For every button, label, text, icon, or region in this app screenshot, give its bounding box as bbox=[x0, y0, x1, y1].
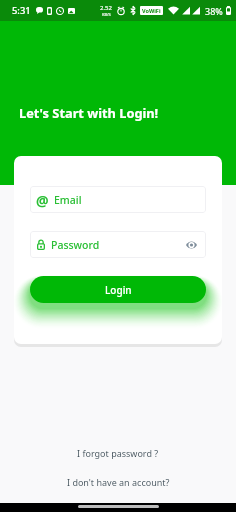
staticText: Password bbox=[51, 238, 100, 252]
staticText: @ bbox=[36, 191, 49, 210]
staticText: I don't have an account? bbox=[67, 476, 170, 488]
button[interactable]: Password bbox=[30, 231, 206, 258]
staticText: 2.52 bbox=[100, 4, 112, 12]
button[interactable]: Show password bbox=[184, 238, 198, 252]
staticText: Login bbox=[105, 283, 132, 297]
staticText: VoWiFi bbox=[142, 7, 161, 14]
staticText: 38% bbox=[205, 5, 223, 17]
button[interactable]: Login bbox=[30, 276, 206, 303]
staticText: KB/S bbox=[102, 12, 111, 17]
staticText: Email bbox=[54, 193, 82, 207]
staticText: 5:31 bbox=[12, 4, 31, 17]
button[interactable]: I don't have an account? bbox=[57, 473, 180, 491]
staticText: Let's Start with Login! bbox=[19, 104, 159, 121]
button[interactable]: @ bbox=[30, 186, 206, 213]
button[interactable]: I forgot password ? bbox=[67, 444, 169, 462]
staticText: I forgot password ? bbox=[77, 447, 159, 459]
